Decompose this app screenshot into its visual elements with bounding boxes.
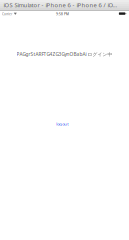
staticText: iOS Simulator - iPhone 6 - iPhone 6 / iO…: [3, 1, 117, 9]
staticText: PAGgrStARFTG4ZG3GynOBabAi ログイン中: [16, 51, 112, 57]
staticText: Carrier: [2, 12, 12, 16]
staticText: 9:58 PM: [56, 12, 69, 16]
staticText: logout: [56, 121, 68, 127]
button[interactable]: logout: [53, 119, 71, 129]
